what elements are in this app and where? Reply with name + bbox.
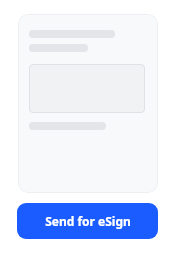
staticText: Send for eSign (45, 213, 131, 229)
button[interactable]: Send for eSign (17, 203, 158, 239)
button[interactable] (18, 14, 158, 193)
